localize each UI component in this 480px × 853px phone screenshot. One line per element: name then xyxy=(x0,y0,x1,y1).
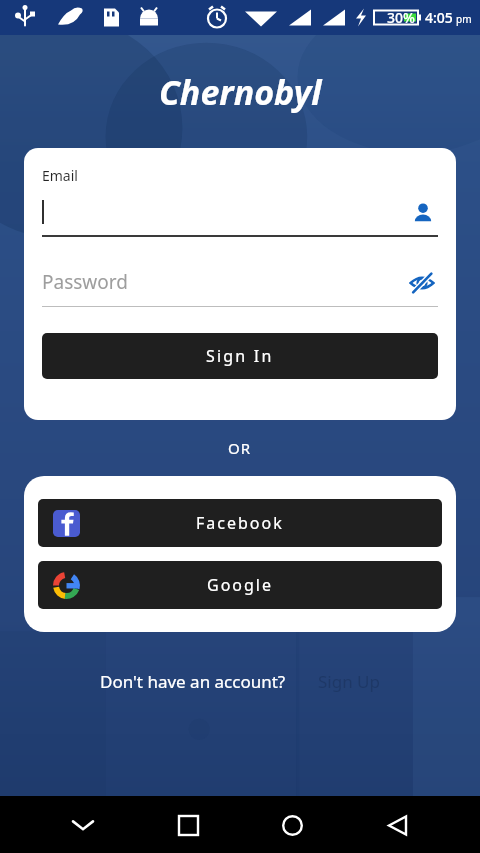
staticText: Google xyxy=(207,574,274,596)
staticText: Facebook xyxy=(196,512,284,534)
staticText: Sign In xyxy=(206,345,274,367)
button[interactable]: Home xyxy=(270,803,314,847)
button[interactable]: Sign In xyxy=(42,333,438,379)
staticText: Chernobyl xyxy=(159,69,322,115)
staticText: Sign Up xyxy=(318,670,380,693)
staticText: Password xyxy=(42,269,128,295)
staticText: 30% xyxy=(387,8,415,27)
staticText: pm xyxy=(456,12,472,26)
staticText: 4:05 xyxy=(425,8,453,27)
staticText: OR xyxy=(228,438,252,458)
button[interactable]: Sign Up xyxy=(318,670,380,693)
button[interactable]: Back xyxy=(375,803,419,847)
button[interactable]: Google xyxy=(38,561,442,609)
staticText: Don't have an account? xyxy=(100,670,286,693)
button[interactable]: Account xyxy=(42,193,438,237)
button[interactable]: Password xyxy=(42,263,438,307)
button[interactable]: Facebook xyxy=(38,499,442,547)
other: Show password xyxy=(406,267,438,299)
other: Account xyxy=(408,198,438,228)
button[interactable]: Hide keyboard xyxy=(61,803,105,847)
button[interactable]: Recents xyxy=(166,803,210,847)
staticText: Email xyxy=(42,166,78,185)
